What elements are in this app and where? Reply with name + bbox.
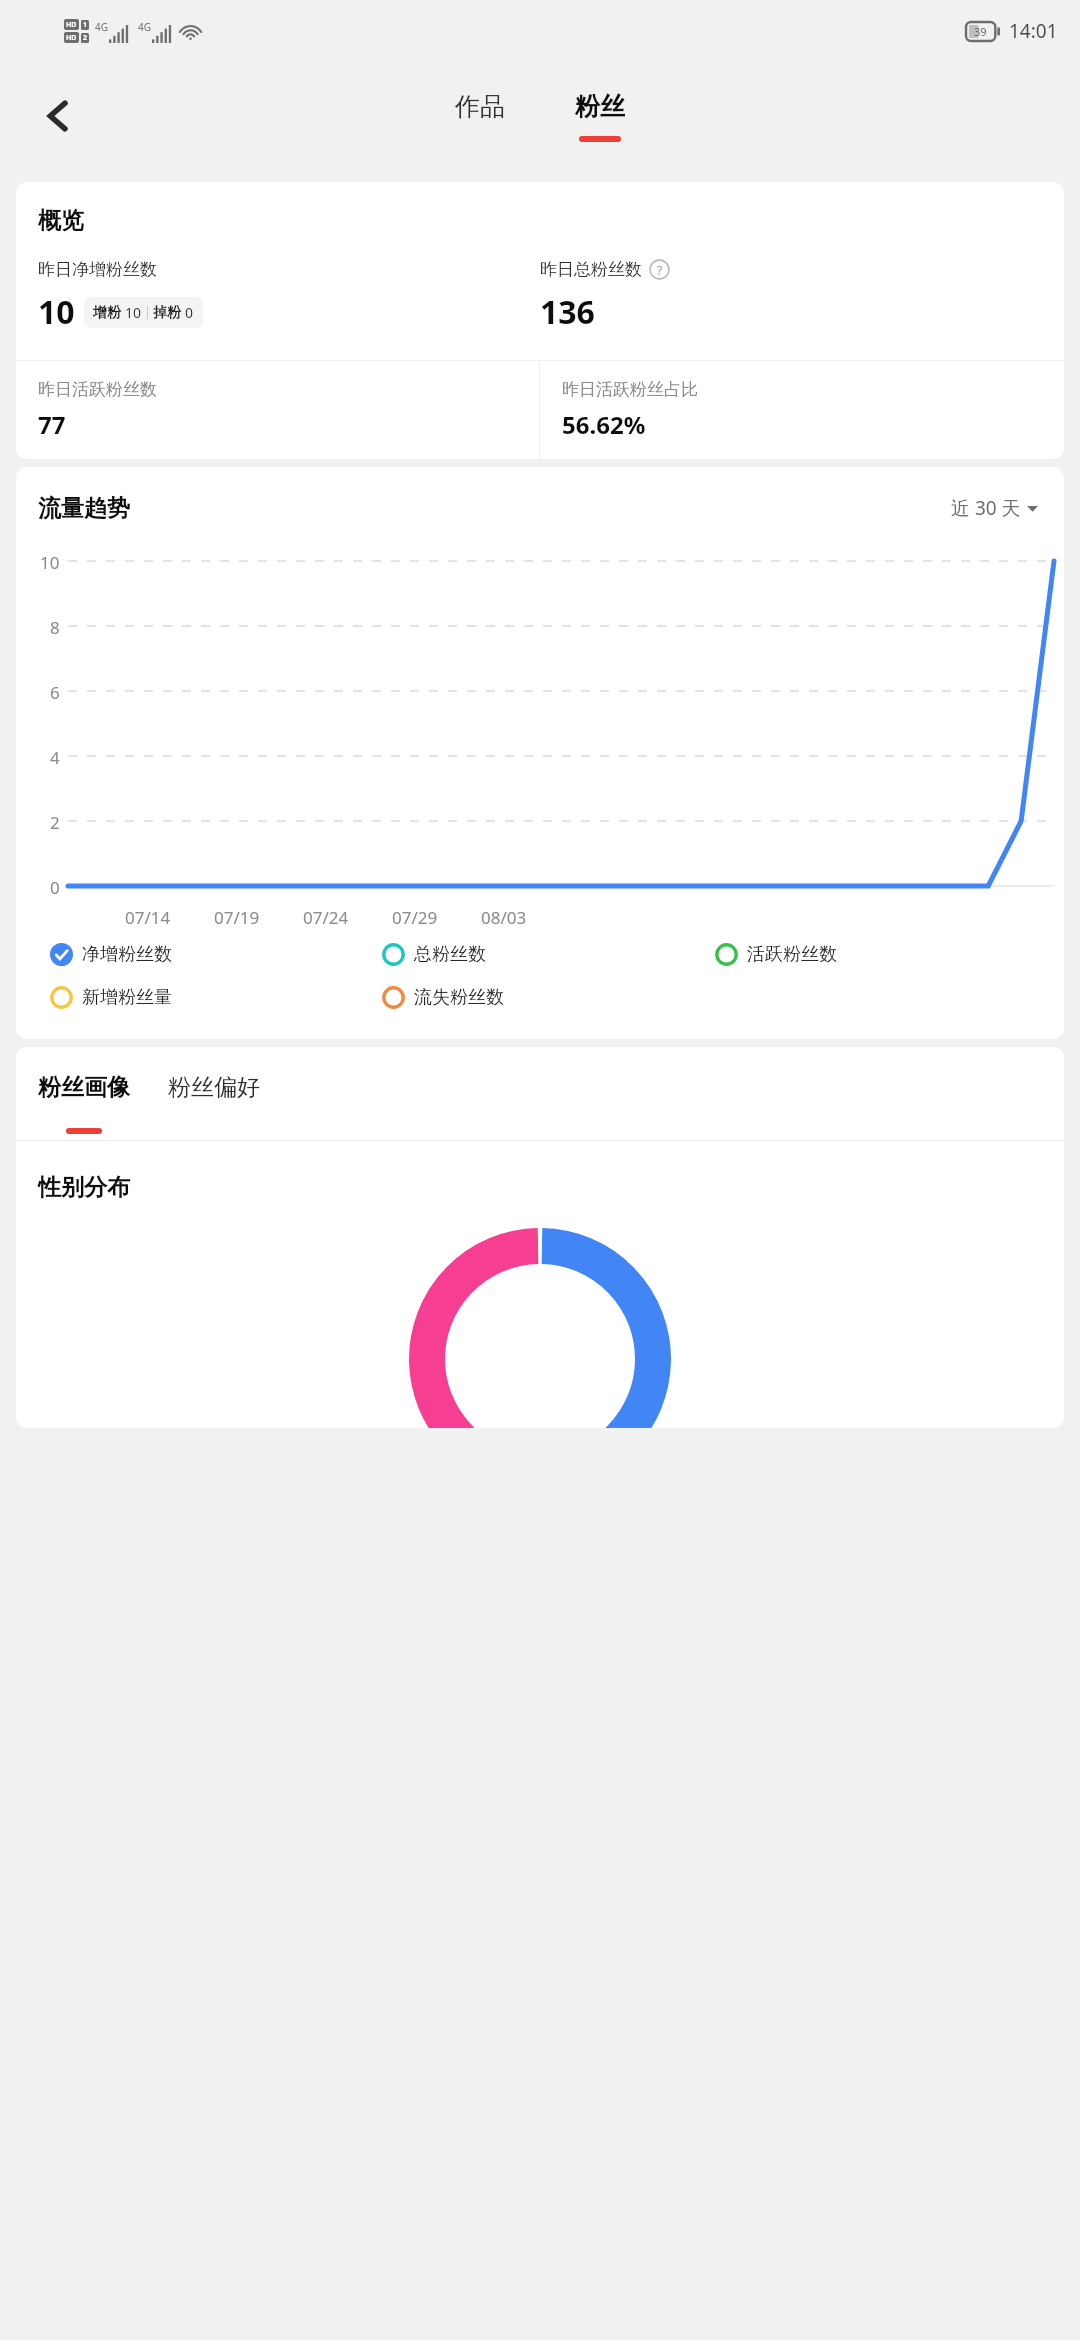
button[interactable]: 总粉丝数 <box>382 939 715 970</box>
button[interactable]: 说明 <box>649 259 670 280</box>
staticText: 39 <box>974 24 987 39</box>
staticText: 56.62% <box>562 408 646 441</box>
staticText: 14:01 <box>1009 18 1058 44</box>
staticText: 0 <box>185 303 194 322</box>
staticText: 77 <box>38 408 66 441</box>
button[interactable]: 活跃粉丝数 <box>715 939 1048 970</box>
button[interactable]: 粉丝画像 <box>38 1073 130 1140</box>
staticText: 掉粉 <box>153 304 181 322</box>
staticText: 概览 <box>38 206 84 235</box>
staticText: ? <box>657 262 663 278</box>
staticText: 10 <box>125 303 142 322</box>
staticText: 4G <box>95 20 108 34</box>
staticText: 粉丝偏好 <box>168 1073 260 1102</box>
staticText: 0 <box>50 876 60 896</box>
staticText: 粉丝画像 <box>38 1073 130 1102</box>
button[interactable]: 近 30 天 <box>947 491 1042 525</box>
staticText: HD <box>66 20 77 30</box>
staticText: 1 <box>83 20 88 30</box>
staticText: 净增粉丝数 <box>82 943 172 966</box>
staticText: 4 <box>50 746 60 766</box>
staticText: 近 30 天 <box>951 495 1021 521</box>
staticText: 性别分布 <box>38 1173 130 1202</box>
staticText: 07/24 <box>303 906 349 929</box>
staticText: 2 <box>83 33 88 43</box>
staticText: 昨日活跃粉丝占比 <box>562 379 698 400</box>
button[interactable]: 作品 <box>445 85 515 148</box>
staticText: 粉丝 <box>575 91 625 122</box>
staticText: 总粉丝数 <box>414 943 486 966</box>
staticText: 昨日净增粉丝数 <box>38 259 157 280</box>
staticText: 流失粉丝数 <box>414 986 504 1009</box>
staticText: 07/19 <box>214 906 260 929</box>
staticText: 4G <box>138 20 151 34</box>
button[interactable]: 流失粉丝数 <box>382 982 715 1013</box>
staticText: 新增粉丝量 <box>82 986 172 1009</box>
button[interactable]: 粉丝偏好 <box>168 1073 260 1140</box>
staticText: 增粉 <box>93 304 121 322</box>
button[interactable]: 净增粉丝数 <box>50 939 382 970</box>
staticText: 昨日活跃粉丝数 <box>38 379 157 400</box>
staticText: 8 <box>50 616 60 636</box>
staticText: 2 <box>50 811 60 831</box>
staticText: 136 <box>540 290 595 334</box>
staticText: 07/14 <box>125 906 171 929</box>
staticText: 昨日总粉丝数 <box>540 259 642 280</box>
staticText: 08/03 <box>481 906 527 929</box>
staticText: 流量趋势 <box>38 494 130 523</box>
button[interactable]: 新增粉丝量 <box>50 982 382 1013</box>
staticText: 6 <box>50 681 60 701</box>
staticText: 10 <box>40 551 60 571</box>
staticText: 07/29 <box>392 906 438 929</box>
button[interactable]: 粉丝 <box>565 85 635 148</box>
staticText: 作品 <box>455 91 505 122</box>
staticText: 10 <box>38 290 75 334</box>
staticText: HD <box>66 33 77 43</box>
staticText: 活跃粉丝数 <box>747 943 837 966</box>
button[interactable]: Back <box>20 78 96 154</box>
